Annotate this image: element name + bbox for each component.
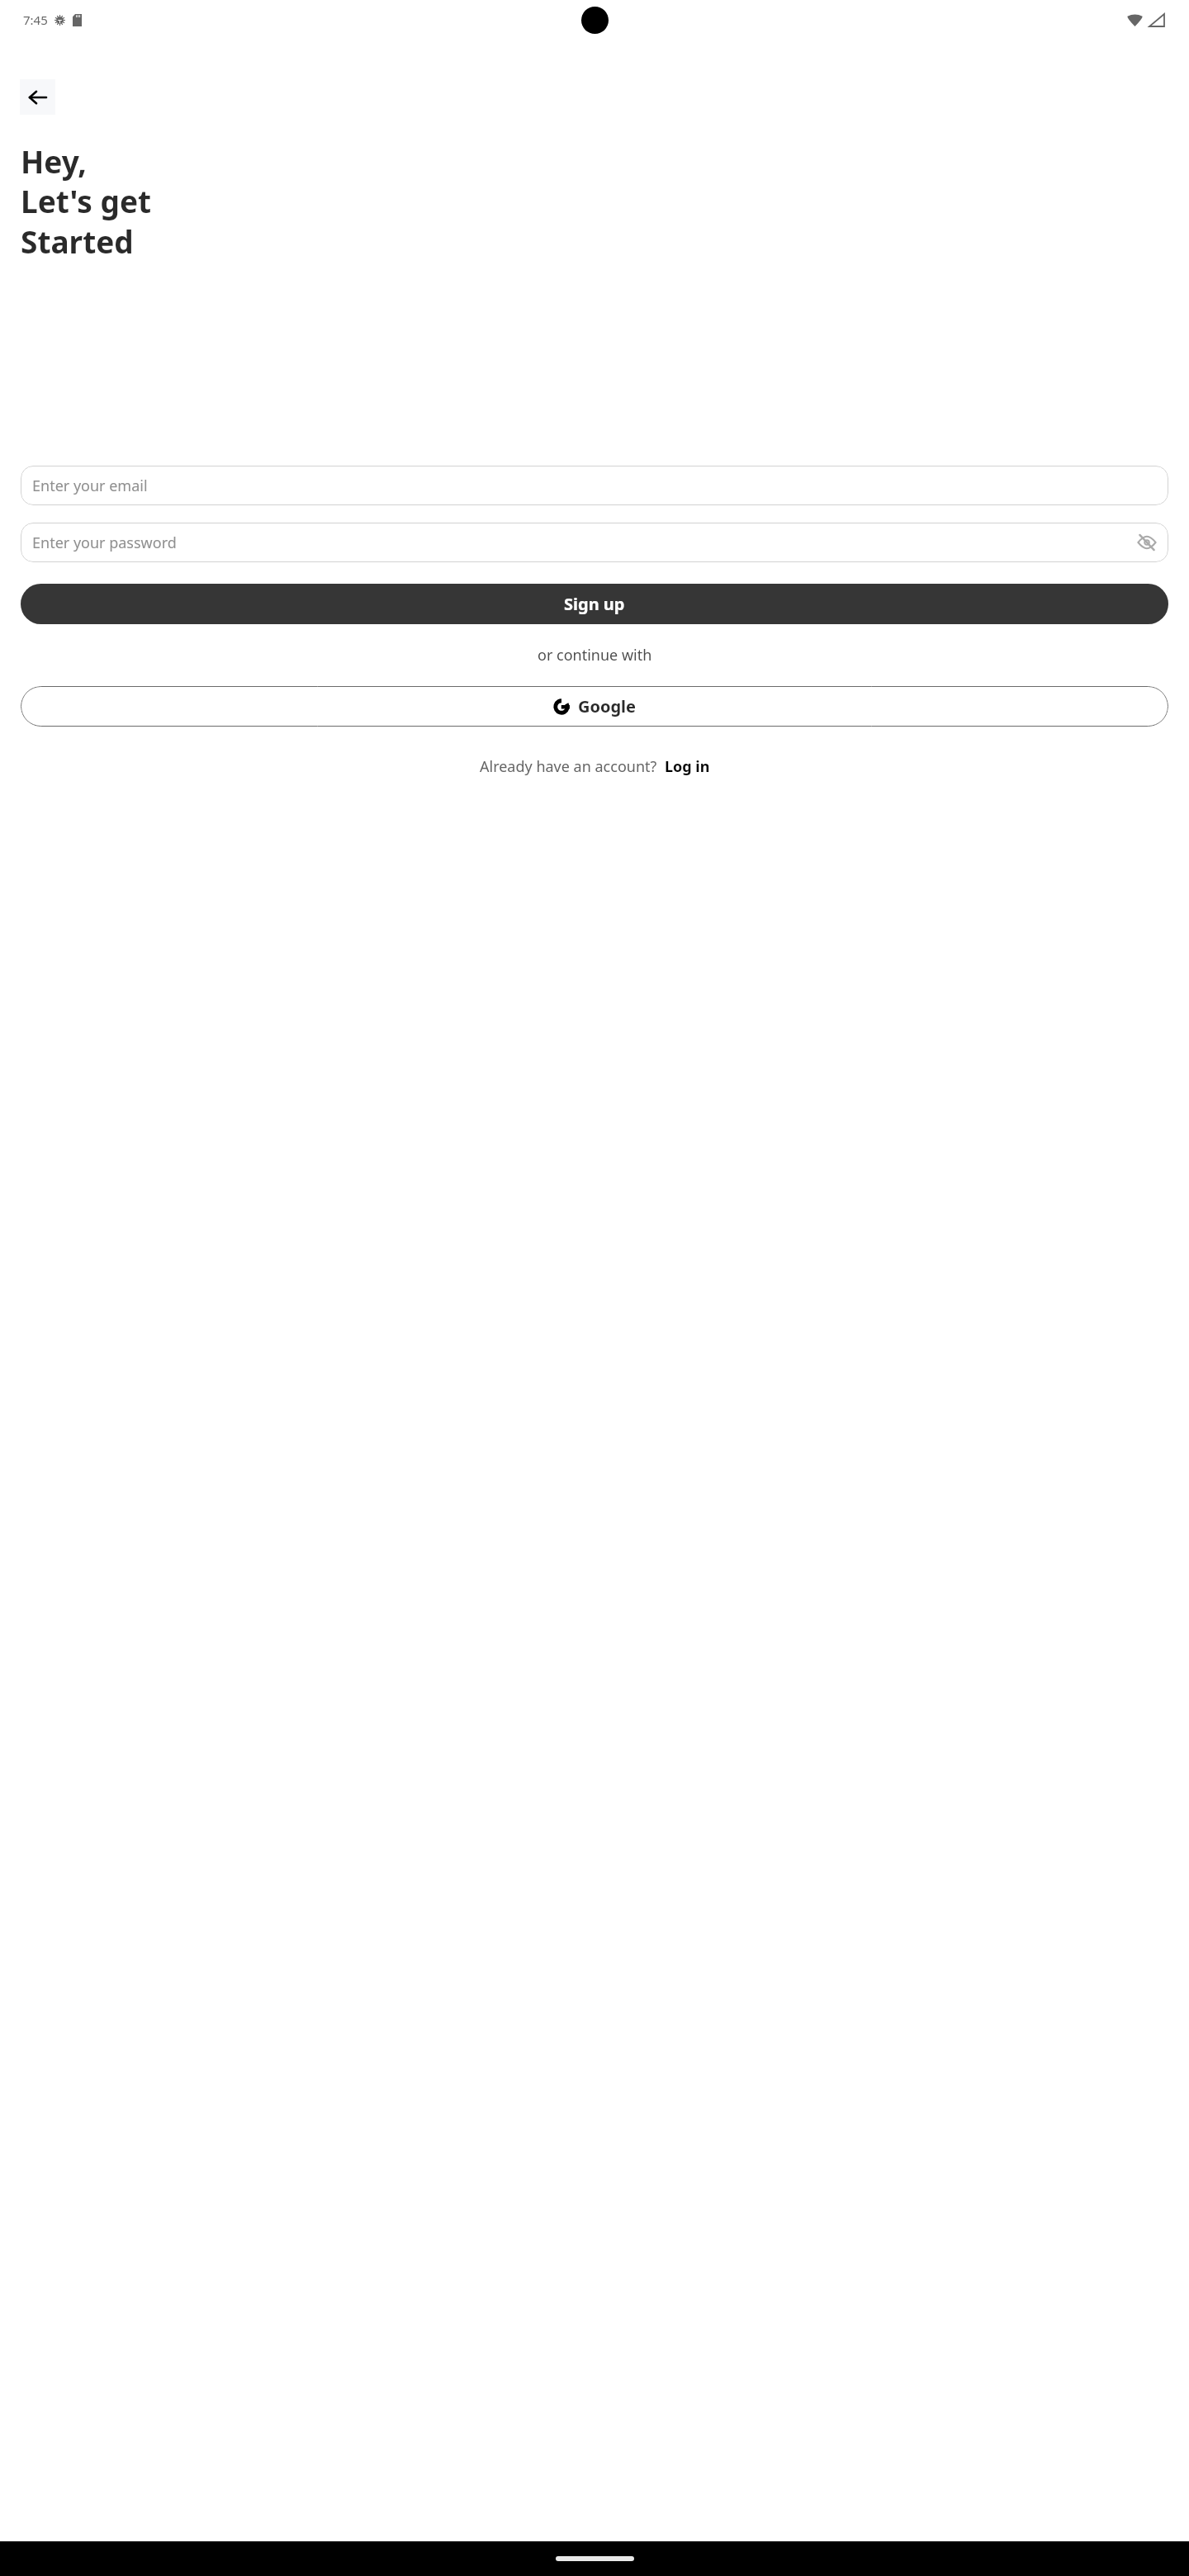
button[interactable]: Enter your email xyxy=(21,466,1168,505)
staticText: Already have an account? xyxy=(480,756,657,777)
button[interactable]: Back xyxy=(20,79,55,115)
button[interactable]: Google xyxy=(21,686,1168,727)
staticText: or continue with xyxy=(538,645,652,665)
button[interactable]: Enter your password xyxy=(21,523,1168,562)
staticText: Google xyxy=(578,695,637,717)
staticText: Hey, Let's get Started xyxy=(21,140,152,263)
button[interactable]: Sign up xyxy=(21,584,1168,624)
staticText: Enter your email xyxy=(32,476,148,496)
button[interactable]: Log in xyxy=(657,756,710,777)
staticText: Sign up xyxy=(564,593,625,615)
button[interactable]: Show password xyxy=(1135,530,1159,555)
staticText: Enter your password xyxy=(32,533,177,553)
staticText: 7:45 xyxy=(23,12,48,28)
staticText: Log in xyxy=(665,756,710,777)
